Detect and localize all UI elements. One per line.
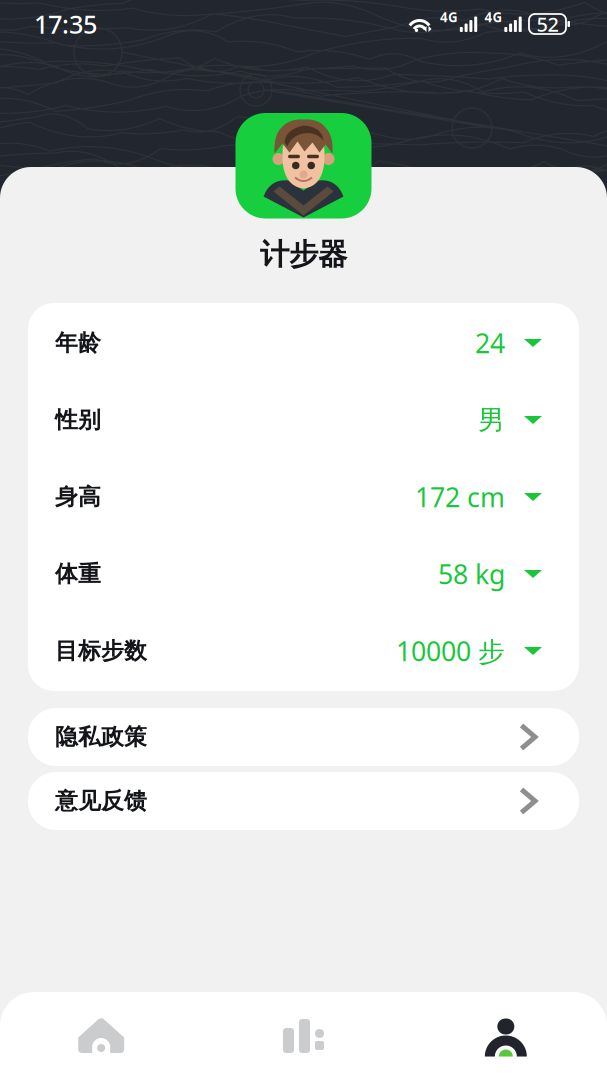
button[interactable]: Profile (405, 992, 607, 1080)
staticText: 男 (478, 404, 505, 436)
staticText: 4G (440, 8, 458, 26)
staticText: 52 (536, 11, 558, 37)
staticText: 体重 (55, 560, 101, 588)
button[interactable]: 体重 (28, 535, 579, 612)
button[interactable]: 隐私政策 (28, 708, 579, 766)
staticText: 172 cm (415, 479, 505, 515)
button[interactable]: 身高 (28, 458, 579, 535)
staticText: 目标步数 (55, 637, 147, 665)
staticText: 10000 步 (396, 633, 505, 669)
button[interactable]: 年龄 (28, 304, 579, 381)
staticText: 身高 (55, 483, 101, 511)
staticText: 意见反馈 (55, 787, 147, 815)
staticText: 计步器 (260, 236, 347, 272)
staticText: 17:35 (34, 7, 97, 41)
button[interactable]: 性别 (28, 381, 579, 458)
button[interactable]: 目标步数 (28, 612, 579, 689)
button[interactable]: Home (0, 992, 202, 1080)
staticText: 年龄 (55, 329, 101, 357)
staticText: 性别 (55, 406, 101, 434)
staticText: 隐私政策 (55, 723, 147, 751)
button[interactable]: 意见反馈 (28, 772, 579, 830)
staticText: 58 kg (438, 556, 505, 592)
button[interactable]: Statistics (202, 992, 405, 1080)
staticText: 24 (475, 325, 505, 361)
staticText: 4G (484, 8, 502, 26)
